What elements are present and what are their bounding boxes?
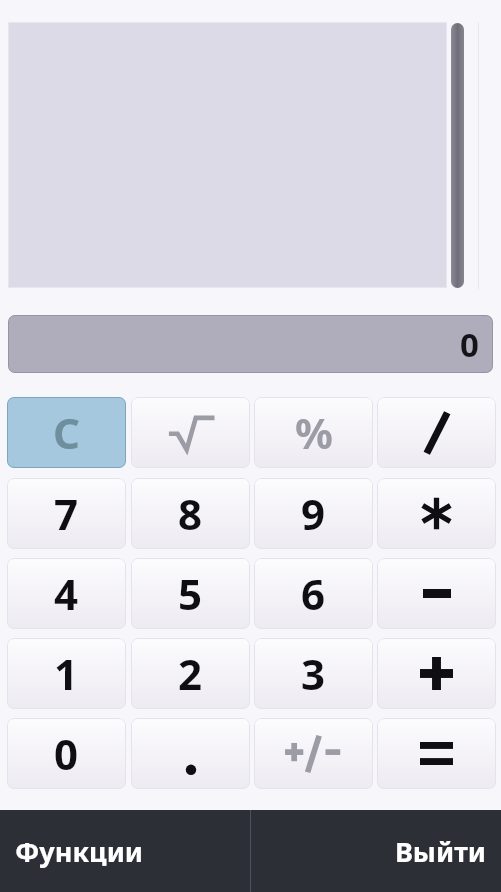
button[interactable]: 1 bbox=[7, 638, 126, 709]
staticText: 7 bbox=[54, 485, 79, 542]
button[interactable]: Plus minus sign bbox=[254, 718, 373, 789]
button[interactable]: 4 bbox=[7, 558, 126, 629]
staticText: 1 bbox=[54, 645, 79, 702]
button[interactable]: 7 bbox=[7, 478, 126, 549]
button[interactable]: Divide bbox=[377, 397, 496, 468]
other: Divide bbox=[421, 411, 453, 455]
button[interactable]: Выйти bbox=[250, 810, 501, 892]
other: Plus minus sign bbox=[282, 735, 346, 773]
other: Decimal point bbox=[173, 732, 209, 776]
other: Multiply bbox=[420, 497, 453, 530]
staticText: 3 bbox=[301, 645, 326, 702]
button[interactable]: Square root bbox=[131, 397, 250, 468]
staticText: 9 bbox=[301, 485, 326, 542]
other: Plus bbox=[420, 657, 453, 690]
staticText: 6 bbox=[301, 565, 326, 622]
button[interactable]: Функции bbox=[0, 810, 250, 892]
staticText: % bbox=[295, 404, 333, 461]
staticText: C bbox=[53, 404, 80, 461]
button[interactable]: 8 bbox=[131, 478, 250, 549]
button[interactable]: C bbox=[7, 397, 126, 468]
button[interactable]: Minus bbox=[377, 558, 496, 629]
button[interactable]: 3 bbox=[254, 638, 373, 709]
button[interactable]: 0 bbox=[7, 718, 126, 789]
button[interactable]: 5 bbox=[131, 558, 250, 629]
other: Equals bbox=[420, 742, 453, 765]
button[interactable]: Equals bbox=[377, 718, 496, 789]
staticText: 8 bbox=[178, 485, 203, 542]
button[interactable]: 2 bbox=[131, 638, 250, 709]
staticText: 5 bbox=[178, 565, 203, 622]
staticText: 0 bbox=[54, 725, 79, 782]
staticText: 2 bbox=[178, 645, 203, 702]
staticText: Выйти bbox=[395, 833, 486, 870]
button[interactable]: 6 bbox=[254, 558, 373, 629]
other: Square root bbox=[167, 415, 215, 451]
button[interactable]: 0 bbox=[8, 315, 493, 373]
button[interactable]: 9 bbox=[254, 478, 373, 549]
button[interactable]: Multiply bbox=[377, 478, 496, 549]
staticText: Функции bbox=[15, 833, 144, 870]
staticText: 4 bbox=[54, 565, 79, 622]
button[interactable]: Decimal point bbox=[131, 718, 250, 789]
button[interactable]: % bbox=[254, 397, 373, 468]
button[interactable]: Plus bbox=[377, 638, 496, 709]
staticText: 0 bbox=[460, 322, 479, 367]
